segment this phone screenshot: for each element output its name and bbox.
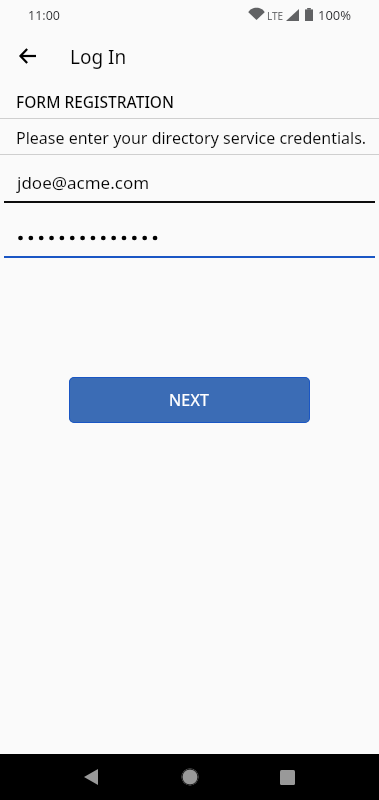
button[interactable]: NEXT [69,377,310,423]
button[interactable]: Navigate up [7,35,48,76]
staticText: Log In [70,44,127,70]
button[interactable]: Home [174,761,206,793]
button[interactable]: Back [75,761,107,793]
staticText: jdoe@acme.com [17,171,150,194]
staticText: NEXT [169,389,210,411]
staticText: 11:00 [28,7,60,24]
staticText: FORM REGISTRATION [16,91,175,112]
button[interactable]: jdoe@acme.com [4,160,375,203]
staticText: LTE [267,9,284,23]
button[interactable]: Recent apps [271,761,303,793]
button[interactable]: FORM REGISTRATION [0,82,379,118]
button[interactable]: Please enter your directory service cred… [0,119,379,154]
button[interactable]: Password [4,216,375,258]
staticText: Please enter your directory service cred… [16,127,367,149]
staticText: 100% [318,6,352,24]
